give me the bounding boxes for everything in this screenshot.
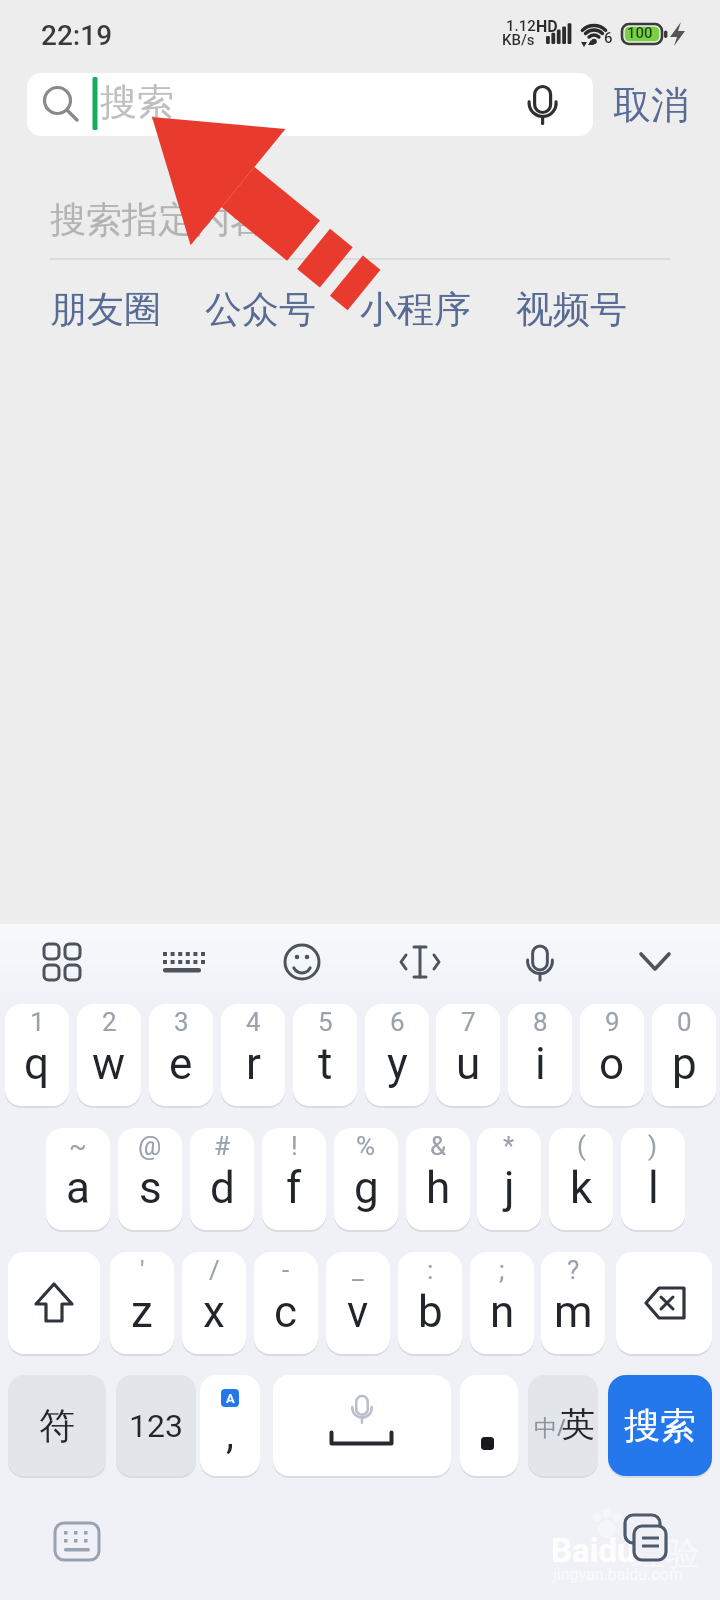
staticText: 22:19 [41, 19, 113, 52]
staticText: w [92, 1038, 126, 1090]
staticText: 小程序 [360, 286, 471, 333]
staticText: ' [140, 1255, 145, 1285]
staticText: HD [536, 17, 558, 36]
staticText: 公众号 [205, 286, 316, 333]
staticText: 3 [174, 1007, 189, 1037]
staticText: ! [291, 1131, 298, 1161]
staticText: 123 [129, 1407, 183, 1445]
staticText: t [318, 1038, 333, 1090]
staticText: 7 [461, 1007, 476, 1037]
staticText: _ [352, 1255, 364, 1285]
staticText: ( [577, 1131, 586, 1161]
staticText: q [24, 1038, 50, 1090]
staticText: 2 [102, 1007, 117, 1037]
staticText: c [274, 1286, 298, 1338]
staticText: ~ [69, 1131, 87, 1161]
staticText: 5 [318, 1007, 333, 1037]
staticText: 0 [677, 1007, 692, 1037]
staticText: y [387, 1038, 408, 1090]
staticText: 搜索 [100, 79, 174, 126]
staticText: : [427, 1255, 434, 1285]
staticText: n [490, 1286, 515, 1338]
staticText: ? [567, 1255, 580, 1285]
staticText: , [226, 1411, 234, 1458]
staticText: g [354, 1162, 379, 1214]
staticText: ) [648, 1131, 658, 1161]
staticText: @ [138, 1131, 162, 1161]
staticText: 搜索指定内容 [50, 197, 266, 242]
staticText: a [66, 1162, 90, 1214]
staticText: 搜索 [624, 1403, 696, 1448]
staticText: m [554, 1286, 593, 1338]
staticText: & [430, 1131, 447, 1161]
staticText: 英 [561, 1403, 595, 1446]
staticText: 取消 [613, 81, 689, 129]
staticText: 中/ [534, 1411, 566, 1442]
staticText: % [356, 1131, 376, 1161]
staticText: b [418, 1286, 443, 1338]
staticText: k [570, 1162, 593, 1214]
staticText: 6 [390, 1007, 405, 1037]
staticText: jingyan.baidu.com [553, 1565, 683, 1584]
staticText: Baidu [551, 1531, 636, 1570]
staticText: 100 [627, 24, 653, 42]
staticText: 8 [533, 1007, 548, 1037]
staticText: j [504, 1162, 515, 1214]
staticText: e [169, 1038, 193, 1090]
staticText: / [209, 1255, 220, 1285]
staticText: # [214, 1131, 231, 1161]
staticText: 朋友圈 [50, 286, 161, 333]
staticText: KB/s [502, 31, 535, 49]
staticText: v [347, 1286, 369, 1338]
staticText: r [246, 1038, 261, 1090]
staticText: 1.12 [506, 17, 536, 35]
staticText: 9 [605, 1007, 620, 1037]
staticText: * [503, 1131, 515, 1161]
staticText: p [672, 1038, 697, 1090]
staticText: 6 [604, 29, 613, 47]
staticText: x [203, 1286, 225, 1338]
staticText: - [282, 1255, 290, 1285]
staticText: i [535, 1038, 546, 1090]
staticText: ; [499, 1255, 505, 1285]
staticText: 经验 [632, 1532, 700, 1575]
staticText: d [210, 1162, 235, 1214]
staticText: A [226, 1391, 235, 1406]
staticText: f [286, 1162, 302, 1214]
staticText: u [456, 1038, 481, 1090]
staticText: h [426, 1162, 451, 1214]
staticText: 视频号 [516, 286, 627, 333]
staticText: l [648, 1162, 659, 1214]
staticText: z [131, 1286, 153, 1338]
staticText: 4 [246, 1007, 261, 1037]
staticText: 符 [39, 1403, 75, 1448]
staticText: o [599, 1038, 625, 1090]
staticText: 1 [30, 1007, 45, 1037]
staticText: s [139, 1162, 162, 1214]
